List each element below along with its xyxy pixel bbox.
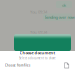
button[interactable]: Choose from files <box>0 60 75 71</box>
staticText: Sending over now <box>44 15 74 20</box>
staticText: You, 09:34 <box>30 9 47 14</box>
staticText: Select a document to share <box>19 56 56 60</box>
staticText: Choose document <box>19 50 55 55</box>
staticText: Choose from files <box>5 64 30 67</box>
staticText: You, 09:34 <box>30 29 47 35</box>
staticText: ok <box>62 3 66 8</box>
